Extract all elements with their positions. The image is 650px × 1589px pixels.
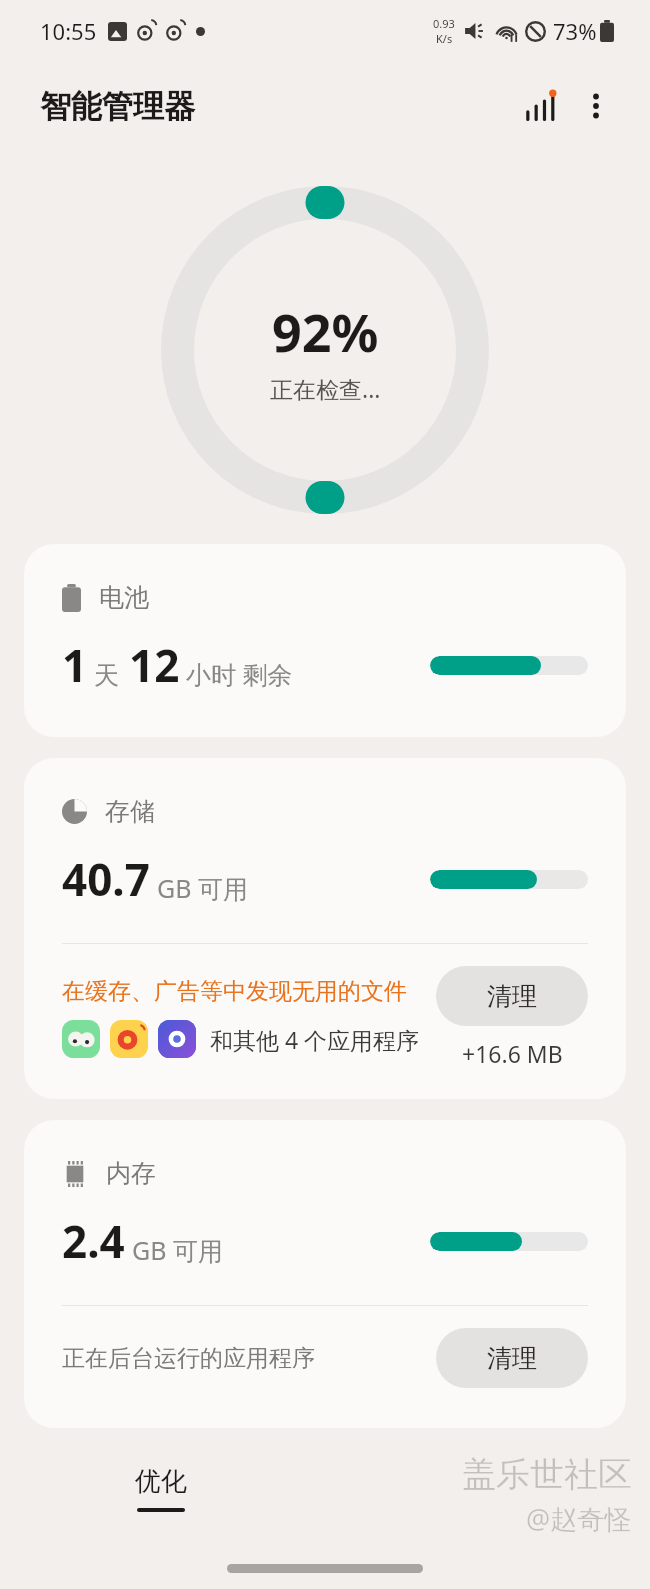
- staticText: 正在后台运行的应用程序: [62, 1344, 315, 1373]
- staticText: 10:55: [40, 16, 97, 46]
- staticText: 清理: [487, 1343, 537, 1374]
- staticText: 0.93: [433, 16, 455, 31]
- staticText: GB 可用: [132, 1233, 223, 1267]
- staticText: 存储: [105, 796, 155, 827]
- button[interactable]: 清理: [436, 966, 588, 1026]
- staticText: 2.4: [62, 1211, 125, 1271]
- staticText: 40.7: [62, 849, 150, 909]
- staticText: +16.6 MB: [462, 1038, 563, 1069]
- staticText: K/s: [436, 31, 453, 46]
- staticText: 小时 剩余: [186, 657, 293, 691]
- staticText: 92%: [272, 296, 379, 367]
- staticText: 1: [62, 635, 88, 695]
- button[interactable]: 清理: [436, 1328, 588, 1388]
- button[interactable]: 内存: [24, 1120, 626, 1428]
- button[interactable]: Usage statistics: [512, 78, 568, 134]
- staticText: 盖乐世社区: [462, 1453, 632, 1496]
- button[interactable]: 存储: [24, 758, 626, 1099]
- staticText: GB 可用: [157, 871, 248, 905]
- staticText: 内存: [106, 1158, 156, 1189]
- button[interactable]: 电池: [24, 544, 626, 737]
- staticText: 正在检查...: [270, 373, 381, 404]
- staticText: 电池: [99, 582, 149, 613]
- staticText: 12: [129, 635, 180, 695]
- staticText: 73%: [553, 16, 597, 46]
- staticText: 优化: [135, 1465, 187, 1498]
- staticText: @赵奇怪: [526, 1500, 632, 1537]
- staticText: 在缓存、广告等中发现无用的文件: [62, 977, 407, 1006]
- button[interactable]: 优化: [135, 1465, 187, 1512]
- staticText: 清理: [487, 981, 537, 1012]
- button[interactable]: More options: [568, 78, 624, 134]
- staticText: 和其他 4 个应用程序: [210, 1024, 420, 1055]
- staticText: 天: [94, 660, 119, 691]
- staticText: 智能管理器: [40, 87, 195, 126]
